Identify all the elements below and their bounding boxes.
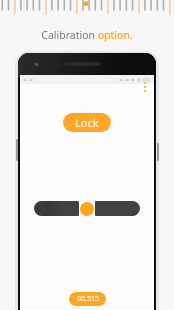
staticText: 00.515 [77, 294, 99, 304]
staticText: Lock [75, 115, 99, 130]
button[interactable]: 00.515 [69, 292, 106, 306]
button[interactable]: Lock [63, 113, 111, 132]
button[interactable]: Calibration slider [20, 199, 154, 217]
button[interactable]: More options [140, 79, 150, 95]
staticText: Calibration option. [0, 28, 174, 42]
